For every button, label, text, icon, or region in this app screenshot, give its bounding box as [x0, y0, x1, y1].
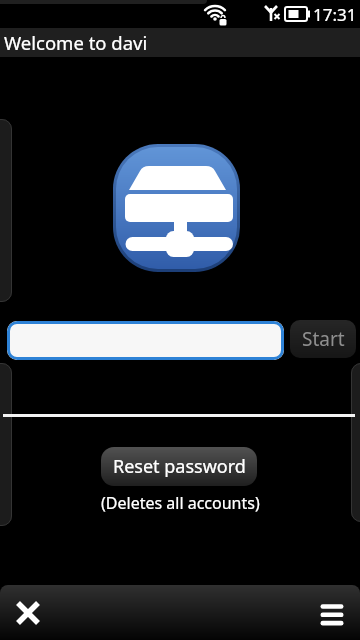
staticText: (Deletes all accounts)	[101, 492, 260, 514]
button[interactable]	[0, 585, 56, 640]
staticText: Welcome to davi	[4, 30, 148, 55]
staticText: Reset password	[113, 454, 246, 479]
button[interactable]	[304, 585, 360, 640]
button[interactable]: Reset password	[101, 447, 257, 486]
staticText: Start	[302, 326, 345, 352]
staticText: 17:31	[313, 3, 357, 26]
button[interactable]: Start	[290, 320, 356, 358]
button[interactable]	[7, 321, 284, 360]
